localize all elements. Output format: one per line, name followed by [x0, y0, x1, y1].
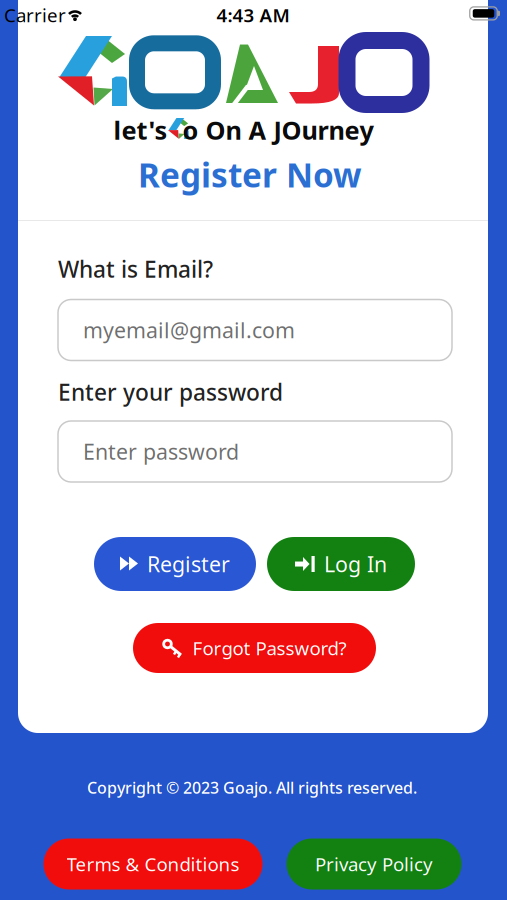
button[interactable]: Terms & Conditions [43, 838, 262, 889]
staticText: Copyright © 2023 Goajo. All rights reser… [87, 777, 417, 798]
staticText: Log In [324, 550, 387, 578]
staticText: Enter password [83, 437, 239, 466]
button[interactable]: myemail@gmail.com [58, 299, 452, 360]
staticText: Enter your password [58, 377, 283, 407]
staticText: o On A JOurney [182, 113, 373, 147]
button[interactable]: Enter password [58, 421, 452, 482]
button[interactable]: Log In [267, 537, 415, 591]
staticText: 4:43 AM [216, 3, 289, 27]
button[interactable]: Privacy Policy [286, 838, 461, 889]
staticText: What is Email? [58, 254, 213, 284]
staticText: Terms & Conditions [66, 852, 239, 876]
staticText: Register Now [138, 152, 362, 197]
button[interactable]: Register [94, 537, 256, 591]
button[interactable]: Forgot Password? [133, 623, 376, 673]
staticText: let's [113, 113, 174, 147]
staticText: Privacy Policy [315, 852, 433, 876]
staticText: Carrier [4, 3, 66, 27]
staticText: myemail@gmail.com [83, 316, 295, 344]
staticText: Forgot Password? [192, 636, 346, 660]
staticText: Register [147, 550, 230, 578]
